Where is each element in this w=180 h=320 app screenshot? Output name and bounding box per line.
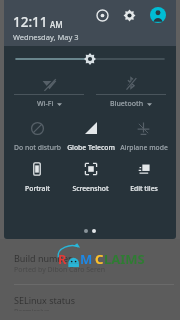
button[interactable]: Edit tiles bbox=[117, 158, 170, 193]
staticText: SELinux status bbox=[14, 294, 75, 306]
staticText: M bbox=[80, 250, 93, 268]
staticText: Screenshot bbox=[72, 184, 109, 193]
button[interactable]: Brightness bbox=[4, 46, 176, 72]
staticText: Ported by Dibon Caro Seren bbox=[14, 265, 106, 275]
button[interactable]: Airplane mode bbox=[117, 117, 170, 152]
staticText: C bbox=[95, 250, 104, 268]
button[interactable]: Globe Telecom bbox=[64, 117, 117, 152]
staticText: Build number bbox=[14, 252, 72, 264]
staticText: Globe Telecom bbox=[67, 143, 115, 152]
staticText: Portrait bbox=[25, 184, 50, 193]
staticText: AM bbox=[50, 19, 63, 30]
staticText: Airplane mode bbox=[120, 143, 168, 152]
staticText: R bbox=[58, 250, 67, 268]
staticText: Wi-Fi bbox=[37, 99, 54, 109]
button[interactable]: Data saver bbox=[93, 6, 111, 24]
button[interactable]: Do not disturb bbox=[10, 117, 64, 152]
staticText: LAIMS bbox=[104, 250, 145, 268]
button[interactable]: SELinux status bbox=[0, 285, 180, 320]
staticText: Do not disturb bbox=[14, 143, 61, 152]
button[interactable]: Screenshot bbox=[64, 158, 117, 193]
staticText: 12:11 bbox=[13, 13, 48, 31]
button[interactable]: Bluetooth bbox=[96, 72, 166, 113]
button[interactable]: Wi-Fi bbox=[14, 72, 84, 113]
staticText: Wednesday, May 3 bbox=[13, 32, 79, 42]
button[interactable]: User bbox=[148, 5, 168, 25]
button[interactable]: Build number bbox=[0, 243, 180, 284]
staticText: Edit tiles bbox=[130, 184, 158, 193]
button[interactable]: Portrait bbox=[10, 158, 64, 193]
staticText: Bluetooth bbox=[110, 99, 144, 109]
staticText: Permissive bbox=[14, 307, 50, 311]
button[interactable]: Settings bbox=[119, 5, 139, 25]
